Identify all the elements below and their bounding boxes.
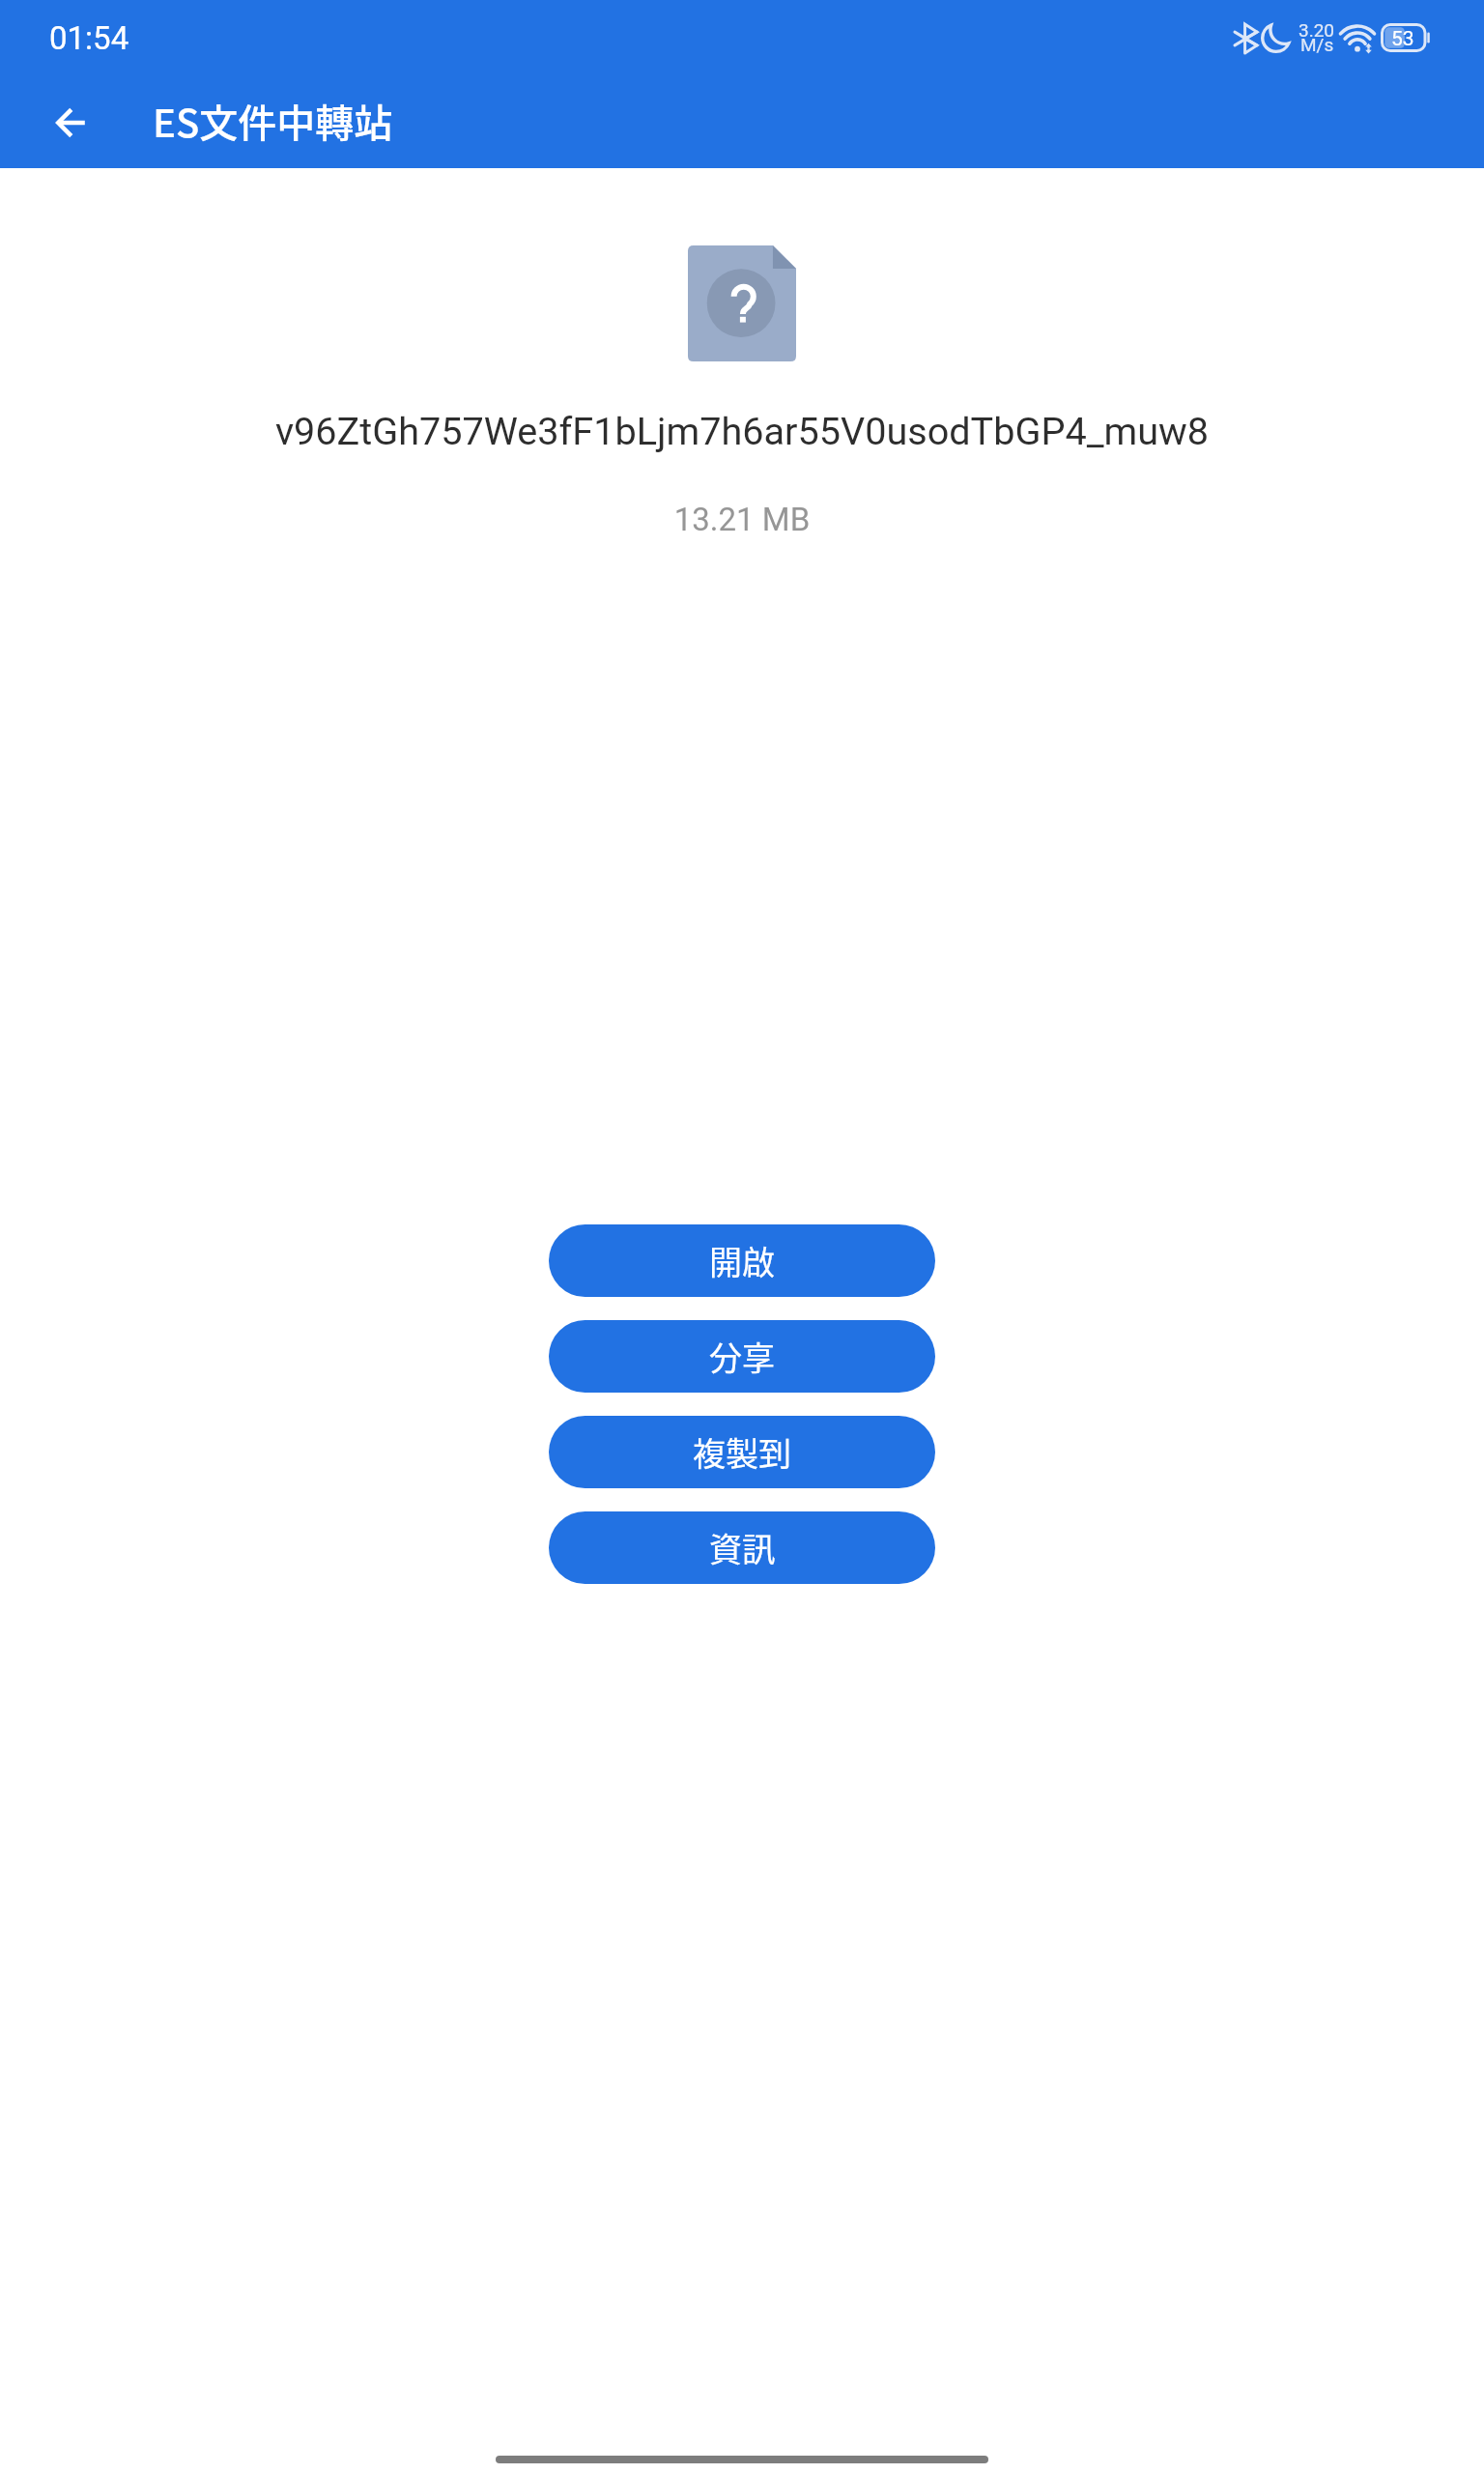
button[interactable]: 開啟 (549, 1224, 935, 1297)
staticText: 3.20 (1298, 19, 1335, 41)
staticText: 分享 (709, 1333, 775, 1380)
staticText: 53 (1391, 27, 1414, 51)
staticText: 開啟 (709, 1237, 775, 1284)
staticText: 資訊 (709, 1524, 775, 1571)
staticText: 複製到 (693, 1428, 791, 1476)
staticText: 01:54 (49, 19, 129, 57)
button[interactable]: 分享 (549, 1320, 935, 1393)
button[interactable]: 資訊 (549, 1511, 935, 1584)
staticText: M/s (1300, 34, 1334, 55)
button[interactable]: Back (41, 92, 102, 154)
staticText: v96ZtGh757We3fF1bLjm7h6ar55V0usodTbGP4_m… (0, 409, 1484, 453)
staticText: ES文件中轉站 (153, 93, 393, 149)
button[interactable]: 複製到 (549, 1416, 935, 1488)
staticText: 13.21 MB (0, 501, 1484, 538)
